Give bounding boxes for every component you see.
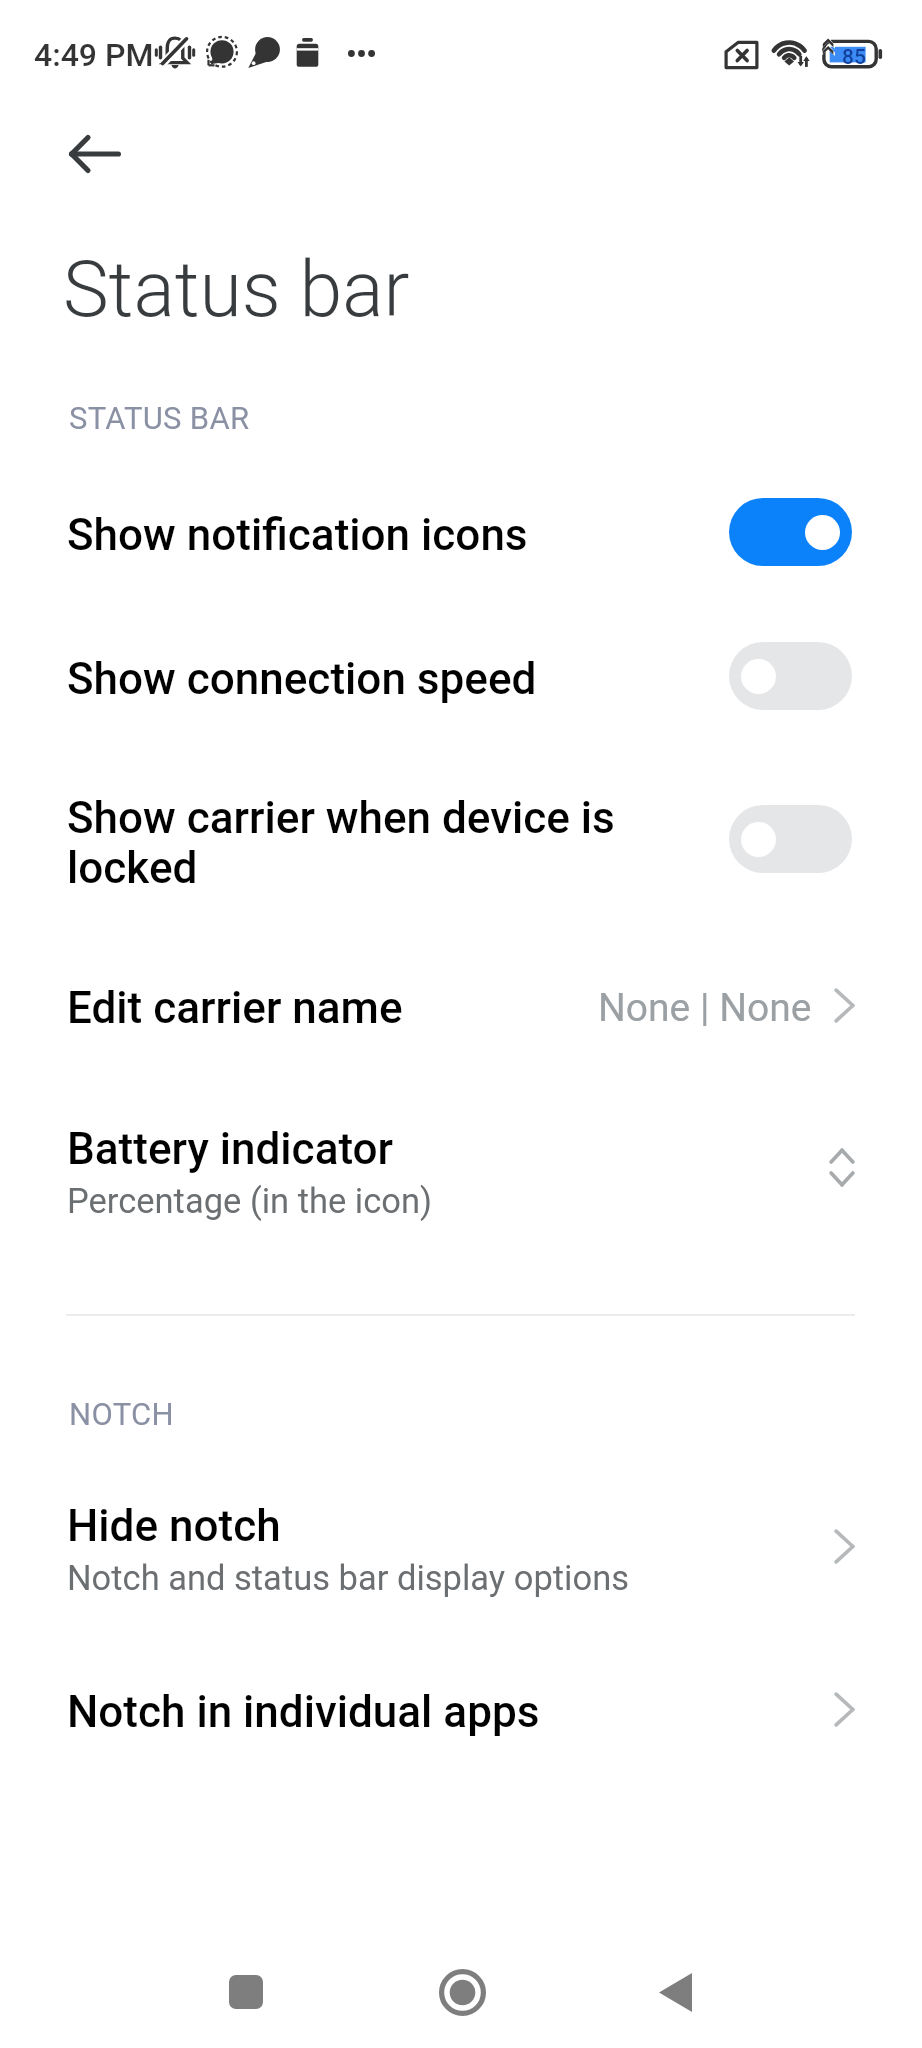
button[interactable]: Edit carrier name — [0, 934, 922, 1082]
button[interactable]: Disabled — [729, 805, 852, 873]
staticText: NOTCH — [69, 1396, 174, 1432]
staticText: Show notification icons — [67, 509, 528, 561]
staticText: Notch in individual apps — [67, 1686, 540, 1738]
button[interactable]: Navigate up — [45, 104, 145, 204]
button[interactable]: Show carrier when device is locked — [0, 743, 922, 941]
staticText: Show carrier when device is locked — [67, 792, 712, 893]
button[interactable]: Show notification icons — [0, 463, 922, 607]
staticText: Percentage (in the icon) — [67, 1181, 433, 1221]
button[interactable]: Battery indicator — [0, 1082, 922, 1262]
staticText: 85 — [842, 45, 866, 70]
staticText: Show connection speed — [67, 653, 537, 705]
button[interactable]: Disabled — [729, 642, 852, 710]
staticText: Status bar — [63, 245, 410, 335]
staticText: STATUS BAR — [69, 400, 250, 436]
staticText: None | None — [598, 985, 812, 1031]
button[interactable]: Notch in individual apps — [0, 1638, 922, 1786]
button[interactable]: Enabled — [729, 498, 852, 566]
button[interactable]: Home — [407, 1937, 517, 2047]
button[interactable]: Recent apps — [191, 1937, 301, 2047]
button[interactable]: Show connection speed — [0, 607, 922, 751]
staticText: Battery indicator — [67, 1123, 394, 1175]
button[interactable]: Hide notch — [0, 1459, 922, 1639]
button[interactable]: Back — [620, 1937, 730, 2047]
staticText: 4:49 PM — [34, 36, 154, 74]
staticText: Hide notch — [67, 1500, 281, 1552]
staticText: Notch and status bar display options — [67, 1558, 630, 1598]
staticText: Edit carrier name — [67, 982, 403, 1034]
